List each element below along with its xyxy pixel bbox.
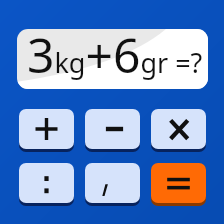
button[interactable]: Equals — [151, 163, 206, 206]
staticText: 3kg+6gr =? — [27, 29, 203, 82]
button[interactable]: Multiply — [151, 109, 206, 152]
button[interactable]: Minus — [85, 109, 140, 152]
button[interactable]: 3kg+6gr =? — [17, 29, 208, 89]
button[interactable]: Divide — [19, 163, 74, 206]
button[interactable]: Plus — [19, 109, 74, 152]
button[interactable]: Decimal comma — [85, 163, 140, 206]
